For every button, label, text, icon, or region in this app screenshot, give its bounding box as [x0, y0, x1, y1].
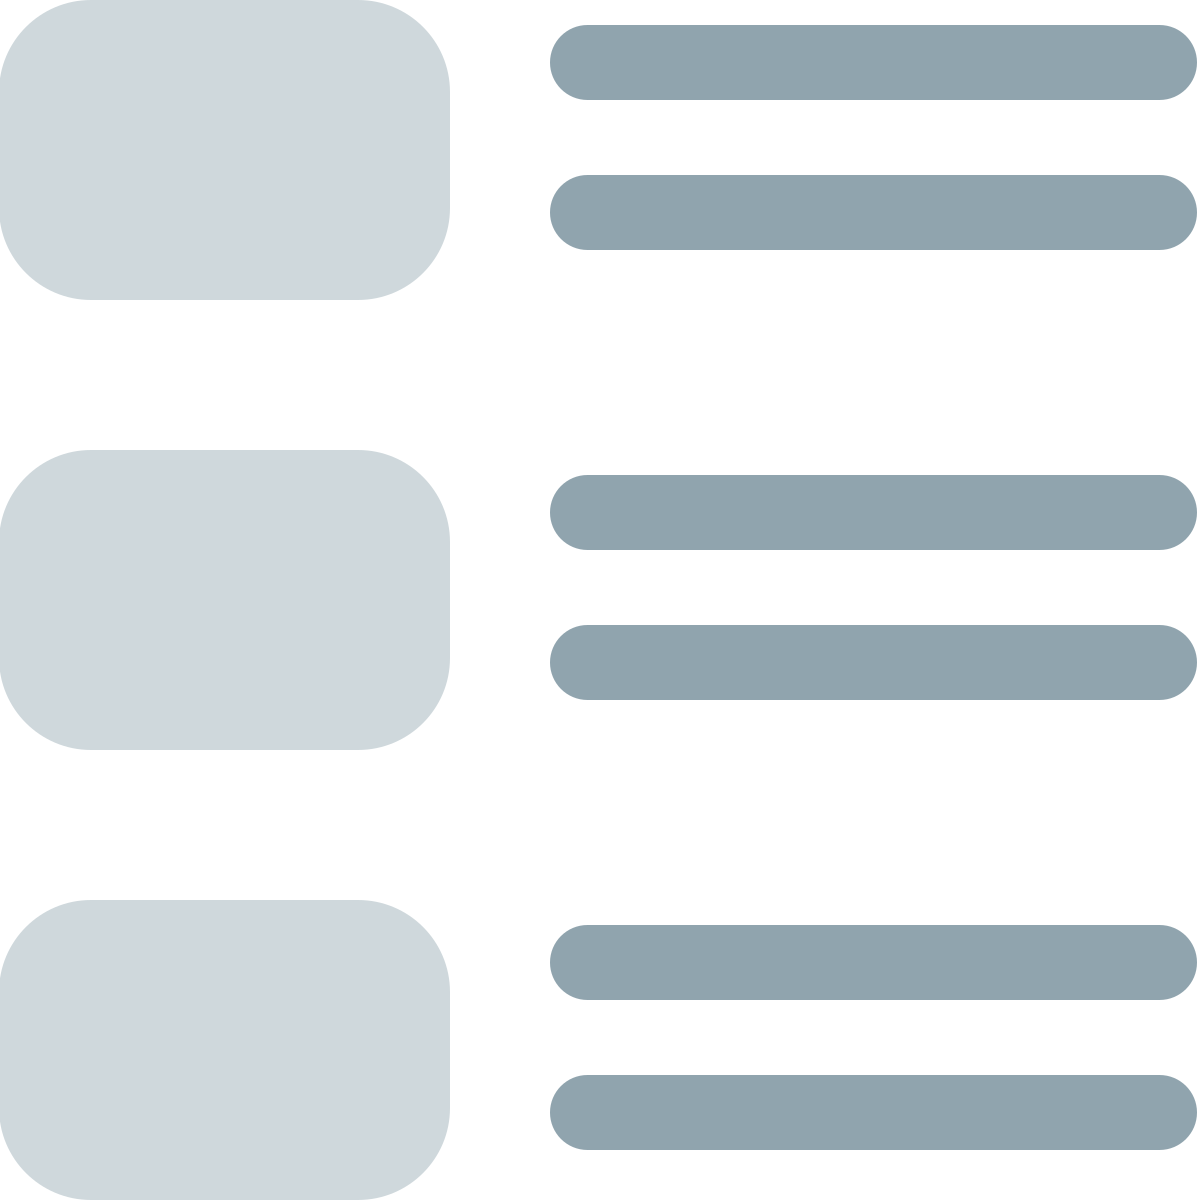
button[interactable]: Loading item [0, 0, 1200, 1200]
button[interactable]: Loading item [0, 0, 1200, 1200]
button[interactable]: Loading item [0, 0, 1200, 1200]
